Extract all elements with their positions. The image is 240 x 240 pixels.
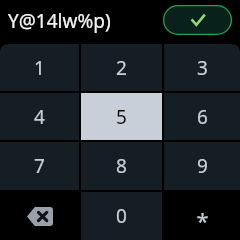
- staticText: 7: [34, 153, 45, 179]
- button[interactable]: 8: [81, 142, 162, 190]
- staticText: 8: [116, 153, 127, 179]
- button[interactable]: 4: [0, 93, 79, 140]
- button[interactable]: 7: [0, 142, 79, 190]
- button[interactable]: 2: [81, 44, 162, 91]
- staticText: 0: [116, 203, 127, 229]
- staticText: 1: [34, 55, 45, 81]
- button[interactable]: 5: [81, 93, 162, 140]
- button[interactable]: 0: [81, 192, 162, 240]
- staticText: 6: [197, 104, 208, 130]
- staticText: 9: [197, 153, 208, 179]
- staticText: 4: [34, 104, 45, 130]
- staticText: Y@14lw%p): [8, 8, 111, 34]
- button[interactable]: 1: [0, 44, 79, 91]
- button[interactable]: 6: [164, 93, 240, 140]
- staticText: 3: [197, 55, 208, 81]
- button[interactable]: *: [164, 192, 240, 240]
- button[interactable]: Confirm: [163, 5, 232, 35]
- button[interactable]: 9: [164, 142, 240, 190]
- button[interactable]: Backspace: [0, 192, 79, 240]
- staticText: *: [196, 205, 209, 235]
- button[interactable]: 3: [164, 44, 240, 91]
- staticText: 5: [116, 104, 127, 130]
- staticText: 2: [116, 55, 127, 81]
